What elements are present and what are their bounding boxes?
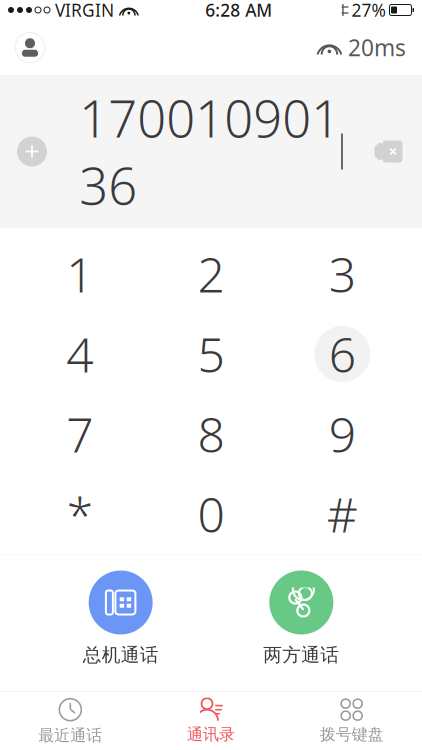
- staticText: 1: [66, 242, 93, 306]
- button[interactable]: Delete: [364, 125, 416, 177]
- staticText: 17001090136: [79, 84, 340, 219]
- staticText: 两方通话: [263, 643, 339, 666]
- button[interactable]: 5: [145, 314, 277, 394]
- button[interactable]: 9: [277, 394, 408, 474]
- staticText: 5: [197, 322, 224, 386]
- button[interactable]: 7: [14, 394, 145, 474]
- staticText: 通讯录: [187, 725, 235, 744]
- button[interactable]: 2: [145, 234, 277, 314]
- staticText: 总机通话: [83, 643, 159, 666]
- button[interactable]: 总机通话: [61, 570, 181, 666]
- button[interactable]: *: [14, 474, 145, 554]
- staticText: 27%: [351, 0, 385, 21]
- button[interactable]: 0: [145, 474, 277, 554]
- staticText: 20ms: [348, 32, 406, 62]
- button[interactable]: 1: [14, 234, 145, 314]
- staticText: *: [67, 482, 93, 546]
- staticText: 3: [329, 242, 356, 306]
- staticText: 8: [197, 402, 224, 466]
- staticText: #: [327, 482, 358, 546]
- button[interactable]: 通讯录: [141, 692, 281, 750]
- staticText: 拨号键盘: [320, 725, 384, 744]
- button[interactable]: 8: [145, 394, 277, 474]
- button[interactable]: Account: [8, 25, 52, 69]
- button[interactable]: 4: [14, 314, 145, 394]
- staticText: 4: [66, 322, 93, 386]
- button[interactable]: 拨号键盘: [281, 692, 422, 750]
- staticText: 2: [197, 242, 224, 306]
- button[interactable]: #: [277, 474, 408, 554]
- staticText: 6:28 AM: [205, 0, 272, 21]
- button[interactable]: 3: [277, 234, 408, 314]
- button[interactable]: Add plus: [6, 125, 58, 177]
- staticText: 7: [66, 402, 93, 466]
- button[interactable]: Network latency 20 milliseconds: [309, 25, 414, 69]
- staticText: 9: [329, 402, 356, 466]
- staticText: 最近通话: [38, 726, 102, 745]
- staticText: 0: [197, 482, 224, 546]
- button[interactable]: 6: [277, 314, 408, 394]
- button[interactable]: 两方通话: [241, 570, 361, 666]
- staticText: VIRGIN: [55, 0, 114, 21]
- staticText: 6: [329, 322, 356, 386]
- button[interactable]: 最近通话: [0, 692, 141, 750]
